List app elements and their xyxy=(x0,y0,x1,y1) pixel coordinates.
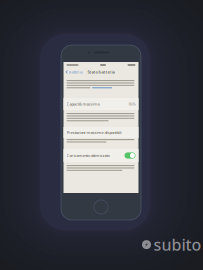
staticText: subito xyxy=(153,234,201,255)
staticText: Caricamento ottimizzato xyxy=(66,153,109,158)
staticText: Prestazioni massime disponibili xyxy=(66,130,121,135)
staticText: 86% xyxy=(128,101,135,107)
staticText: Batteria xyxy=(69,69,83,75)
staticText: Capacità massima xyxy=(66,101,99,107)
button[interactable]: Capacità massima xyxy=(63,98,138,110)
button[interactable]: Caricamento ottimizzato xyxy=(63,149,138,162)
button[interactable]: Batteria xyxy=(63,67,83,77)
staticText: Stato batteria xyxy=(87,69,114,75)
button[interactable]: Prestazioni massime disponibili xyxy=(63,127,138,138)
